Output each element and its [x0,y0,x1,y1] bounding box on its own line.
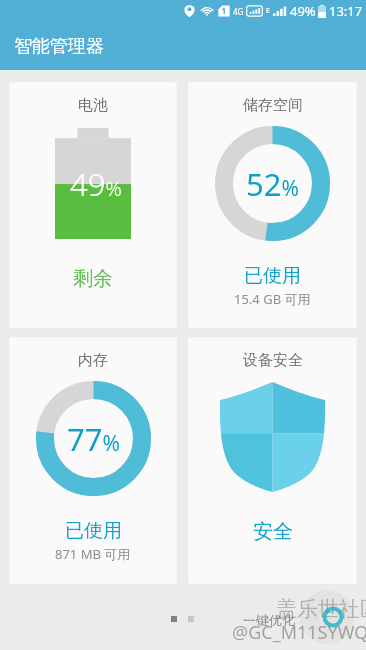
staticText: 智能管理器 [14,35,104,58]
staticText: 内存 [78,351,108,370]
staticText: 已使用 [65,519,122,543]
staticText: 49% [290,2,316,20]
staticText: 已使用 [244,264,301,288]
staticText: E [266,6,270,16]
staticText: 871 MB 可用 [55,545,131,563]
staticText: 安全 [253,519,293,544]
staticText: 一键优化 [243,612,295,628]
staticText: 52% [246,163,299,205]
button[interactable]: 设备安全 [188,337,357,584]
staticText: 77% [67,418,120,460]
staticText: 储存空间 [243,96,303,115]
staticText: 13:17 [329,2,363,20]
staticText: 4G [233,6,244,17]
staticText: 盖乐世社区 [276,596,366,622]
button[interactable]: 储存空间 [188,82,357,328]
button[interactable]: 内存 [9,337,177,584]
staticText: 电池 [78,96,108,115]
staticText: 设备安全 [243,351,303,370]
button[interactable]: 电池 [9,82,177,328]
staticText: @GC_M11SYWQF [232,620,366,645]
staticText: 15.4 GB 可用 [234,290,311,308]
staticText: 剩余 [73,266,113,291]
staticText: 49% [70,163,122,205]
